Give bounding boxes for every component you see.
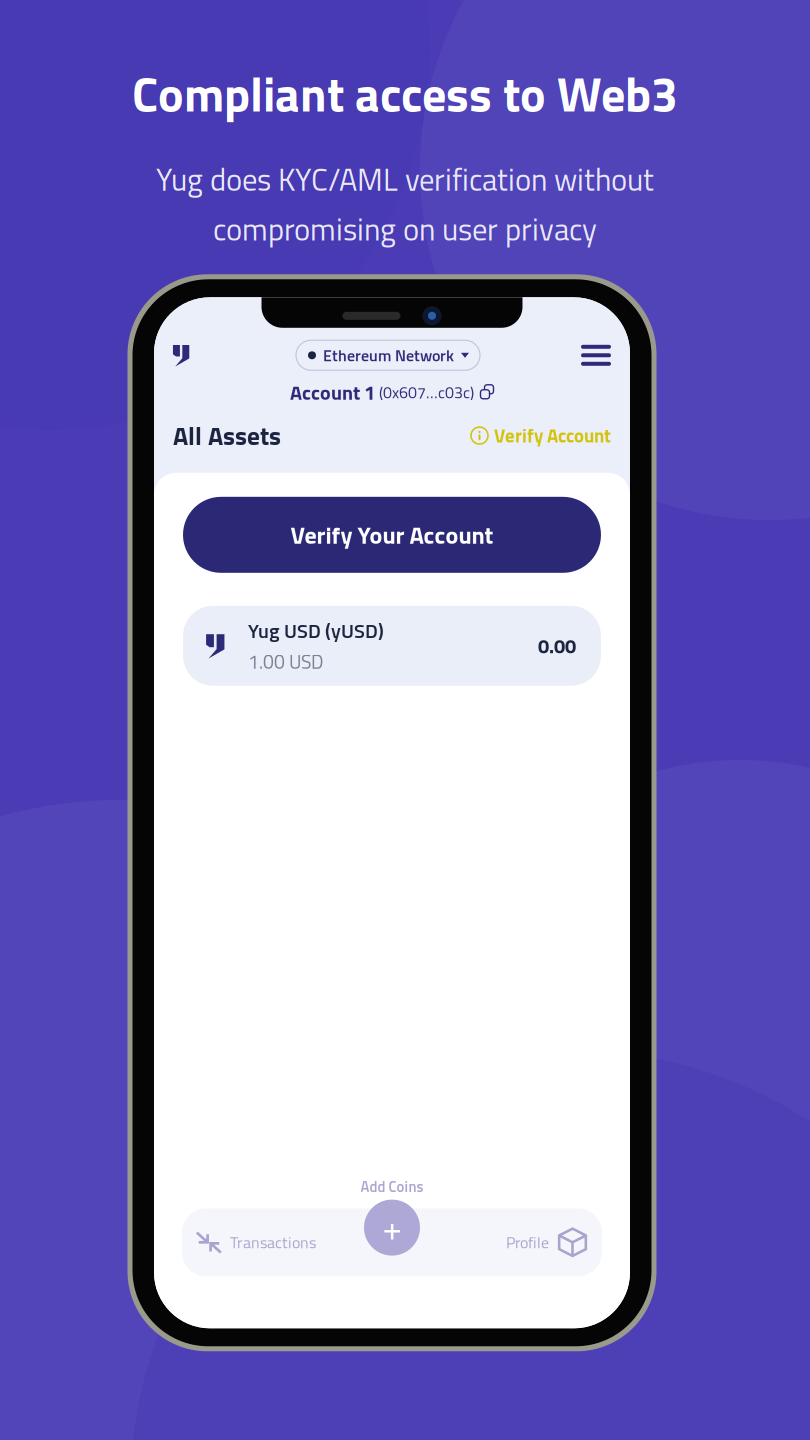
staticText: + [382,1201,401,1254]
button[interactable]: Account 1 [290,381,494,403]
button[interactable]: Ethereum Network [296,340,480,370]
staticText: Verify Account [494,421,611,450]
staticText: Yug USD (yUSD) [248,615,384,646]
button[interactable]: Verify Your Account [183,497,601,573]
staticText: Verify Your Account [290,517,493,553]
staticText: Account 1 [290,377,375,407]
staticText: Transactions [230,1230,316,1254]
button[interactable]: Add Coins [360,1175,423,1256]
staticText: Add Coins [360,1175,423,1198]
staticText: Compliant access to Web3 [132,57,678,130]
staticText: All Assets [173,416,281,455]
button[interactable]: Yug USD (yUSD) [183,606,601,686]
button[interactable]: Transactions [182,1208,354,1276]
button[interactable]: Verify Account [471,423,611,449]
staticText: Profile [506,1230,549,1254]
staticText: Ethereum Network [323,343,454,367]
button[interactable]: Profile [430,1208,602,1276]
button[interactable]: Menu [580,344,612,366]
staticText: 0.00 [538,631,576,661]
staticText: 1.00 USD [248,647,323,676]
staticText: (0x607…c03c) [375,380,478,404]
staticText: Yug does KYC/AML verification without [156,156,654,203]
staticText: compromising on user privacy [213,206,597,252]
